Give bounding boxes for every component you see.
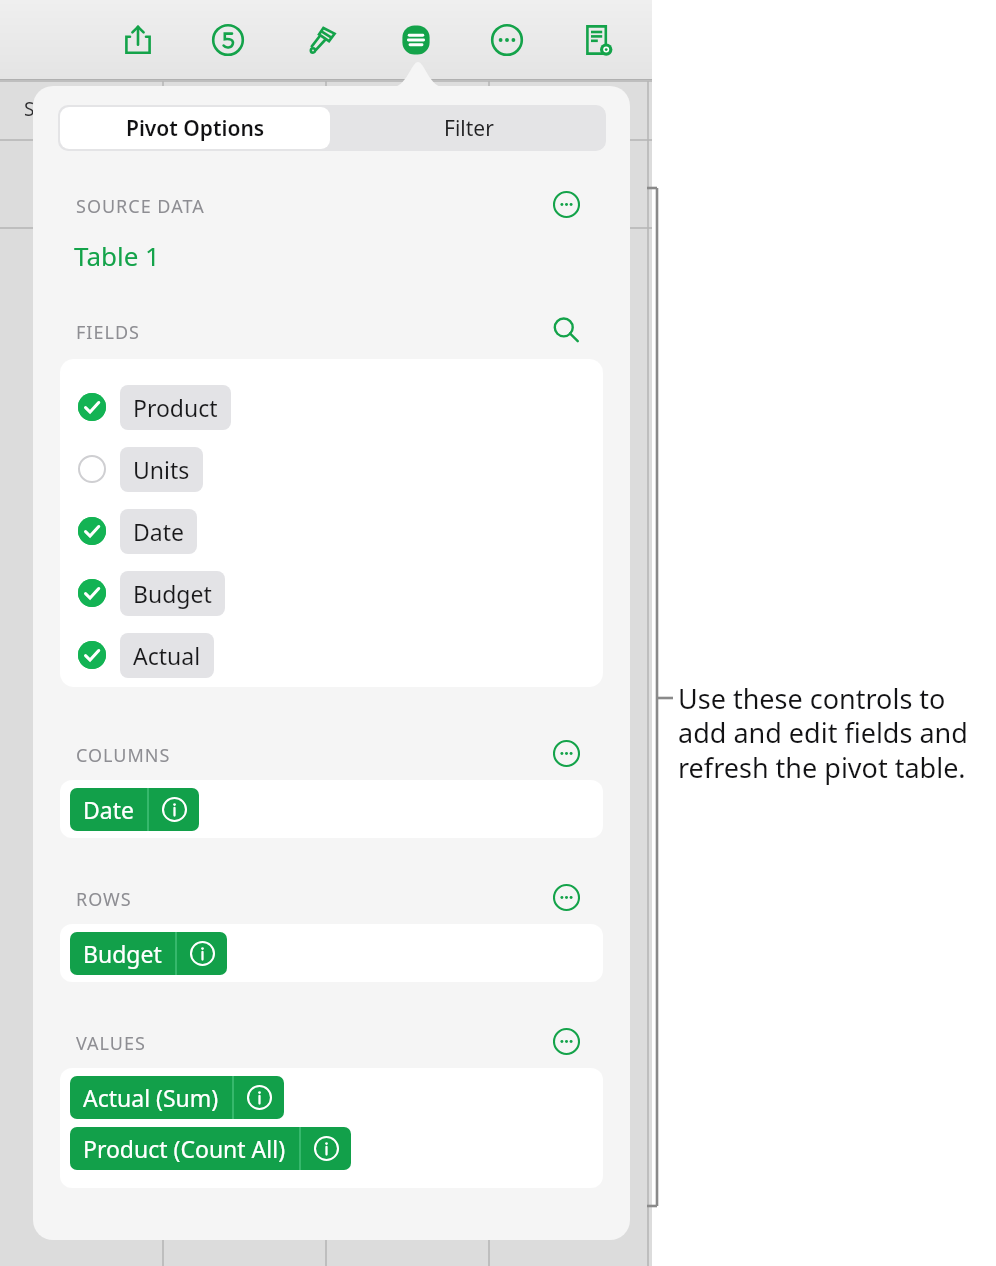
staticText: Date (133, 516, 184, 547)
button[interactable]: Actual (60, 624, 603, 686)
staticText: Budget (83, 938, 162, 969)
staticText: COLUMNS (76, 743, 171, 768)
staticText: Product (Count All) (83, 1133, 286, 1164)
button[interactable]: Info about Actual (Sum) (234, 1076, 284, 1119)
staticText: Pivot Options (126, 114, 265, 143)
button[interactable]: Share (112, 14, 164, 66)
staticText: FIELDS (76, 320, 140, 345)
staticText: Date (83, 794, 134, 825)
button[interactable]: Date (60, 500, 603, 562)
button[interactable]: Units (60, 438, 603, 500)
staticText: Table 1 (74, 238, 160, 273)
button[interactable]: Info about Date (149, 788, 199, 831)
button[interactable]: Budget (70, 932, 227, 975)
button[interactable]: Search fields (545, 317, 587, 343)
button[interactable]: Undo (202, 14, 254, 66)
button[interactable]: Format (295, 14, 347, 66)
button[interactable]: More (481, 14, 533, 66)
button[interactable]: Actual (Sum) (70, 1076, 284, 1119)
button[interactable]: Info about Budget (177, 932, 227, 975)
staticText: Actual (Sum) (83, 1082, 219, 1113)
staticText: Actual (133, 640, 201, 671)
button[interactable]: Product (60, 376, 603, 438)
staticText: Filter (444, 114, 494, 143)
button[interactable]: Source data options (545, 191, 587, 217)
staticText: Budget (133, 578, 212, 609)
staticText: Product (133, 392, 218, 423)
button[interactable]: Date (70, 788, 199, 831)
staticText: SOURCE DATA (76, 194, 205, 219)
button[interactable]: Info about Product (Count All) (301, 1127, 351, 1170)
button[interactable]: Document (571, 14, 623, 66)
button[interactable]: Rows options (545, 884, 587, 910)
button[interactable]: Product (Count All) (70, 1127, 351, 1170)
button[interactable]: Organize (390, 14, 442, 66)
staticText: S (24, 96, 35, 122)
button[interactable]: Columns options (545, 740, 587, 766)
button[interactable]: Values options (545, 1028, 587, 1054)
button[interactable]: Pivot Options (60, 107, 330, 149)
staticText: VALUES (76, 1031, 146, 1056)
staticText: Units (133, 454, 190, 485)
button[interactable]: Filter (332, 105, 606, 151)
staticText: Use these controls to add and edit field… (678, 680, 990, 786)
button[interactable]: Budget (60, 562, 603, 624)
staticText: ROWS (76, 887, 132, 912)
